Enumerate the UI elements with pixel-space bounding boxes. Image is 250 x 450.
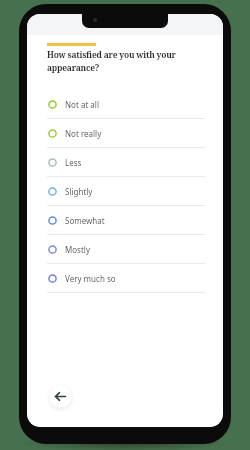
staticText: How satisfied are you with your appearan… — [47, 49, 176, 73]
staticText: Not really — [65, 128, 102, 139]
button[interactable] — [46, 382, 75, 411]
staticText: Mostly — [65, 244, 90, 255]
staticText: Slightly — [65, 186, 93, 197]
staticText: Not at all — [65, 99, 99, 110]
button[interactable]: Very much so — [27, 264, 223, 293]
staticText: Very much so — [65, 273, 116, 284]
button[interactable]: Not at all — [27, 90, 223, 119]
staticText: Somewhat — [65, 215, 105, 226]
button[interactable]: Less — [27, 148, 223, 177]
button[interactable]: Mostly — [27, 235, 223, 264]
button[interactable]: Slightly — [27, 177, 223, 206]
button[interactable]: Somewhat — [27, 206, 223, 235]
staticText: Less — [65, 157, 82, 168]
button[interactable]: Not really — [27, 119, 223, 148]
